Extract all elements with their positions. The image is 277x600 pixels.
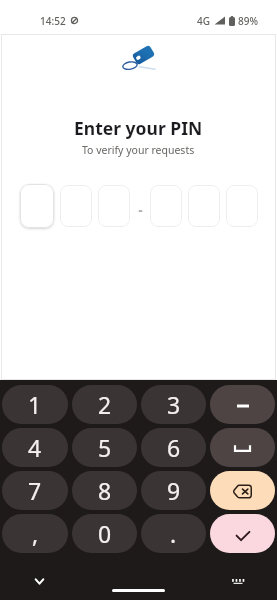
staticText: ,: [32, 518, 39, 549]
button[interactable]: [150, 185, 182, 227]
staticText: 89%: [238, 14, 258, 28]
button[interactable]: .: [141, 514, 206, 553]
button[interactable]: [98, 185, 130, 227]
staticText: 6: [167, 432, 181, 463]
button[interactable]: Change keyboard: [227, 570, 249, 592]
staticText: 7: [28, 475, 42, 506]
button[interactable]: ,: [2, 514, 68, 553]
button[interactable]: 7: [2, 471, 68, 510]
staticText: 14:52: [40, 14, 66, 28]
staticText: 9: [167, 475, 181, 506]
staticText: To verify your requests: [82, 143, 195, 157]
staticText: 8: [98, 475, 112, 506]
button[interactable]: Done: [210, 514, 275, 553]
button[interactable]: 9: [141, 471, 206, 510]
staticText: Enter your PIN: [74, 116, 203, 140]
button[interactable]: 0: [72, 514, 137, 553]
button[interactable]: 2: [72, 385, 137, 424]
staticText: 0: [98, 518, 112, 549]
button[interactable]: 6: [141, 428, 206, 467]
button[interactable]: Dash: [210, 385, 275, 424]
button[interactable]: Backspace: [210, 471, 275, 510]
button[interactable]: 4: [2, 428, 68, 467]
staticText: .: [170, 518, 177, 549]
button[interactable]: [20, 184, 54, 228]
button[interactable]: 3: [141, 385, 206, 424]
staticText: 1: [28, 389, 42, 420]
staticText: 2: [98, 389, 112, 420]
button[interactable]: 5: [72, 428, 137, 467]
staticText: 4: [28, 432, 42, 463]
button[interactable]: Space: [210, 428, 275, 467]
button[interactable]: Hide keyboard: [28, 570, 50, 592]
staticText: 4G: [197, 14, 210, 28]
button[interactable]: 1: [2, 385, 68, 424]
button[interactable]: [60, 185, 92, 227]
button[interactable]: 8: [72, 471, 137, 510]
staticText: 3: [167, 389, 181, 420]
staticText: 5: [98, 432, 112, 463]
button[interactable]: [188, 185, 220, 227]
button[interactable]: [226, 185, 258, 227]
